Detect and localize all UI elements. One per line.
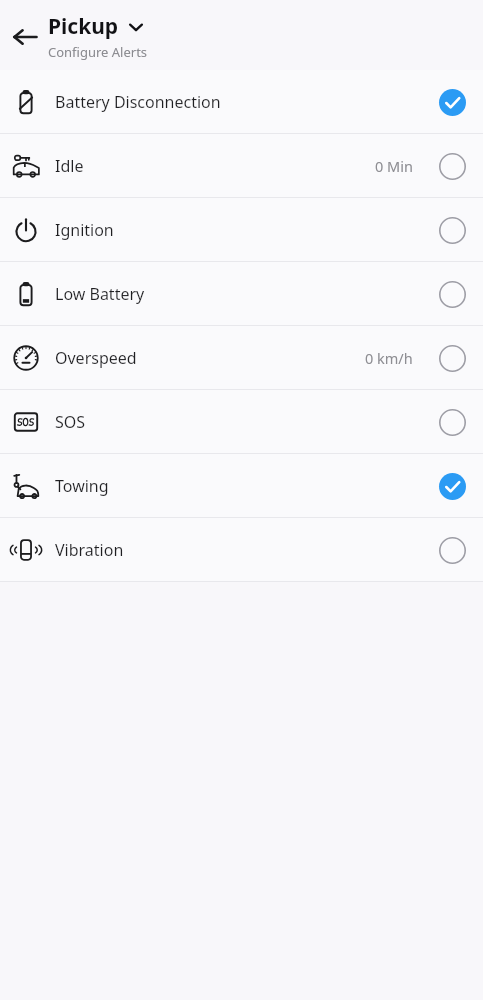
staticText: Idle (55, 155, 84, 177)
button[interactable]: Ignition toggle (432, 210, 472, 250)
button[interactable]: Overspeed toggle (432, 338, 472, 378)
staticText: SOS (55, 411, 86, 433)
staticText: Ignition (55, 219, 114, 241)
staticText: Configure Alerts (48, 43, 148, 61)
button[interactable]: SOS toggle (432, 402, 472, 442)
button[interactable]: Battery Disconnection (0, 70, 483, 133)
button[interactable]: Battery Disconnection toggle (432, 82, 472, 122)
button[interactable]: Change vehicle (126, 17, 146, 37)
staticText: Battery Disconnection (55, 91, 221, 113)
button[interactable]: Vibration (0, 518, 483, 581)
button[interactable]: Towing (0, 454, 483, 517)
button[interactable]: Back (6, 18, 44, 56)
button[interactable]: SOS (0, 390, 483, 453)
staticText: Pickup (48, 12, 119, 41)
staticText: Vibration (55, 539, 124, 561)
button[interactable]: Overspeed (0, 326, 483, 389)
staticText: Low Battery (55, 283, 145, 305)
staticText: 0 km/h (365, 348, 413, 368)
staticText: 0 Min (375, 156, 413, 176)
staticText: Overspeed (55, 347, 137, 369)
button[interactable]: Idle (0, 134, 483, 197)
button[interactable]: Low Battery (0, 262, 483, 325)
button[interactable]: Vibration toggle (432, 530, 472, 570)
button[interactable]: Ignition (0, 198, 483, 261)
button[interactable]: Towing toggle (432, 466, 472, 506)
button[interactable]: Idle toggle (432, 146, 472, 186)
staticText: Towing (55, 475, 109, 497)
button[interactable]: Low Battery toggle (432, 274, 472, 314)
